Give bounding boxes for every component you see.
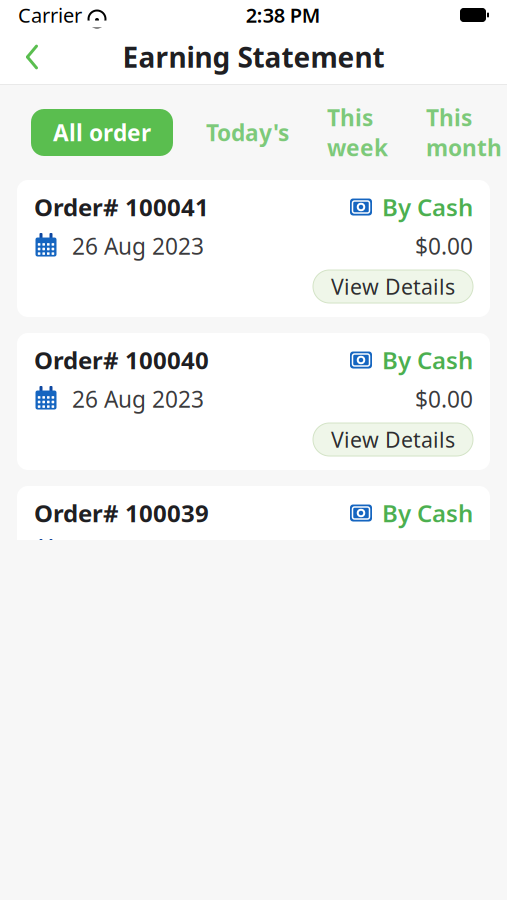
button[interactable]: This week — [327, 109, 388, 156]
staticText: Today's — [206, 117, 289, 147]
staticText: $0.00 — [415, 384, 473, 414]
staticText: This month — [426, 102, 502, 163]
button[interactable]: This month — [426, 109, 502, 156]
staticText: Order# 100041 — [34, 191, 209, 223]
button[interactable]: Today's — [206, 109, 289, 156]
staticText: Order# 100040 — [34, 344, 209, 376]
staticText: Earning Statement — [122, 38, 384, 76]
staticText: 26 Aug 2023 — [72, 231, 204, 261]
button[interactable]: View Details — [313, 270, 473, 303]
button[interactable]: Back — [10, 35, 54, 79]
staticText: By Cash — [382, 497, 473, 529]
staticText: 26 Aug 2023 — [72, 384, 204, 414]
button[interactable]: Order# 100041 — [17, 180, 490, 317]
staticText: Carrier — [18, 2, 82, 28]
button[interactable]: Order# 100039 — [17, 486, 490, 623]
staticText: Order# 100039 — [34, 497, 209, 529]
staticText: This week — [327, 102, 388, 163]
staticText: 2:38 PM — [246, 2, 321, 28]
button[interactable]: All order — [31, 109, 173, 156]
staticText: View Details — [331, 272, 455, 301]
staticText: By Cash — [382, 344, 473, 376]
button[interactable]: Order# 100040 — [17, 333, 490, 470]
staticText: By Cash — [382, 191, 473, 223]
staticText: $0.00 — [415, 231, 473, 261]
staticText: View Details — [331, 425, 455, 454]
staticText: All order — [53, 117, 151, 147]
button[interactable]: View Details — [313, 423, 473, 456]
